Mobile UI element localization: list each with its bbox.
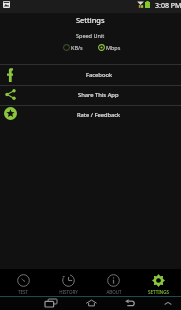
button[interactable]: ABOUT bbox=[91, 269, 136, 296]
staticText: Speed Unit bbox=[76, 32, 105, 39]
button[interactable]: Mbps bbox=[96, 42, 111, 52]
staticText: Facebook bbox=[86, 71, 112, 79]
button[interactable]: SETTINGS bbox=[136, 269, 181, 296]
staticText: ABOUT bbox=[106, 289, 122, 295]
staticText: KB/s bbox=[71, 44, 83, 51]
staticText: Mbps bbox=[106, 44, 121, 51]
staticText: TEST bbox=[18, 289, 28, 295]
staticText: Rate / Feedback bbox=[77, 111, 121, 119]
button[interactable]: Facebook bbox=[0, 65, 181, 85]
button[interactable]: TEST bbox=[0, 269, 46, 296]
button[interactable]: Recent apps bbox=[43, 296, 59, 310]
button[interactable]: Show menu bbox=[161, 296, 175, 310]
staticText: Share This App bbox=[78, 91, 119, 99]
staticText: HISTORY bbox=[59, 289, 78, 295]
button[interactable]: Rate / Feedback bbox=[0, 105, 181, 125]
button[interactable]: Back bbox=[121, 296, 137, 310]
button[interactable]: KB/s bbox=[61, 42, 73, 52]
button[interactable]: Home bbox=[83, 296, 99, 310]
staticText: 3:08 PM bbox=[155, 1, 181, 11]
button[interactable]: Share This App bbox=[0, 85, 181, 105]
staticText: Settings bbox=[76, 15, 105, 25]
button[interactable]: HISTORY bbox=[46, 269, 91, 296]
staticText: SETTINGS bbox=[148, 289, 169, 295]
